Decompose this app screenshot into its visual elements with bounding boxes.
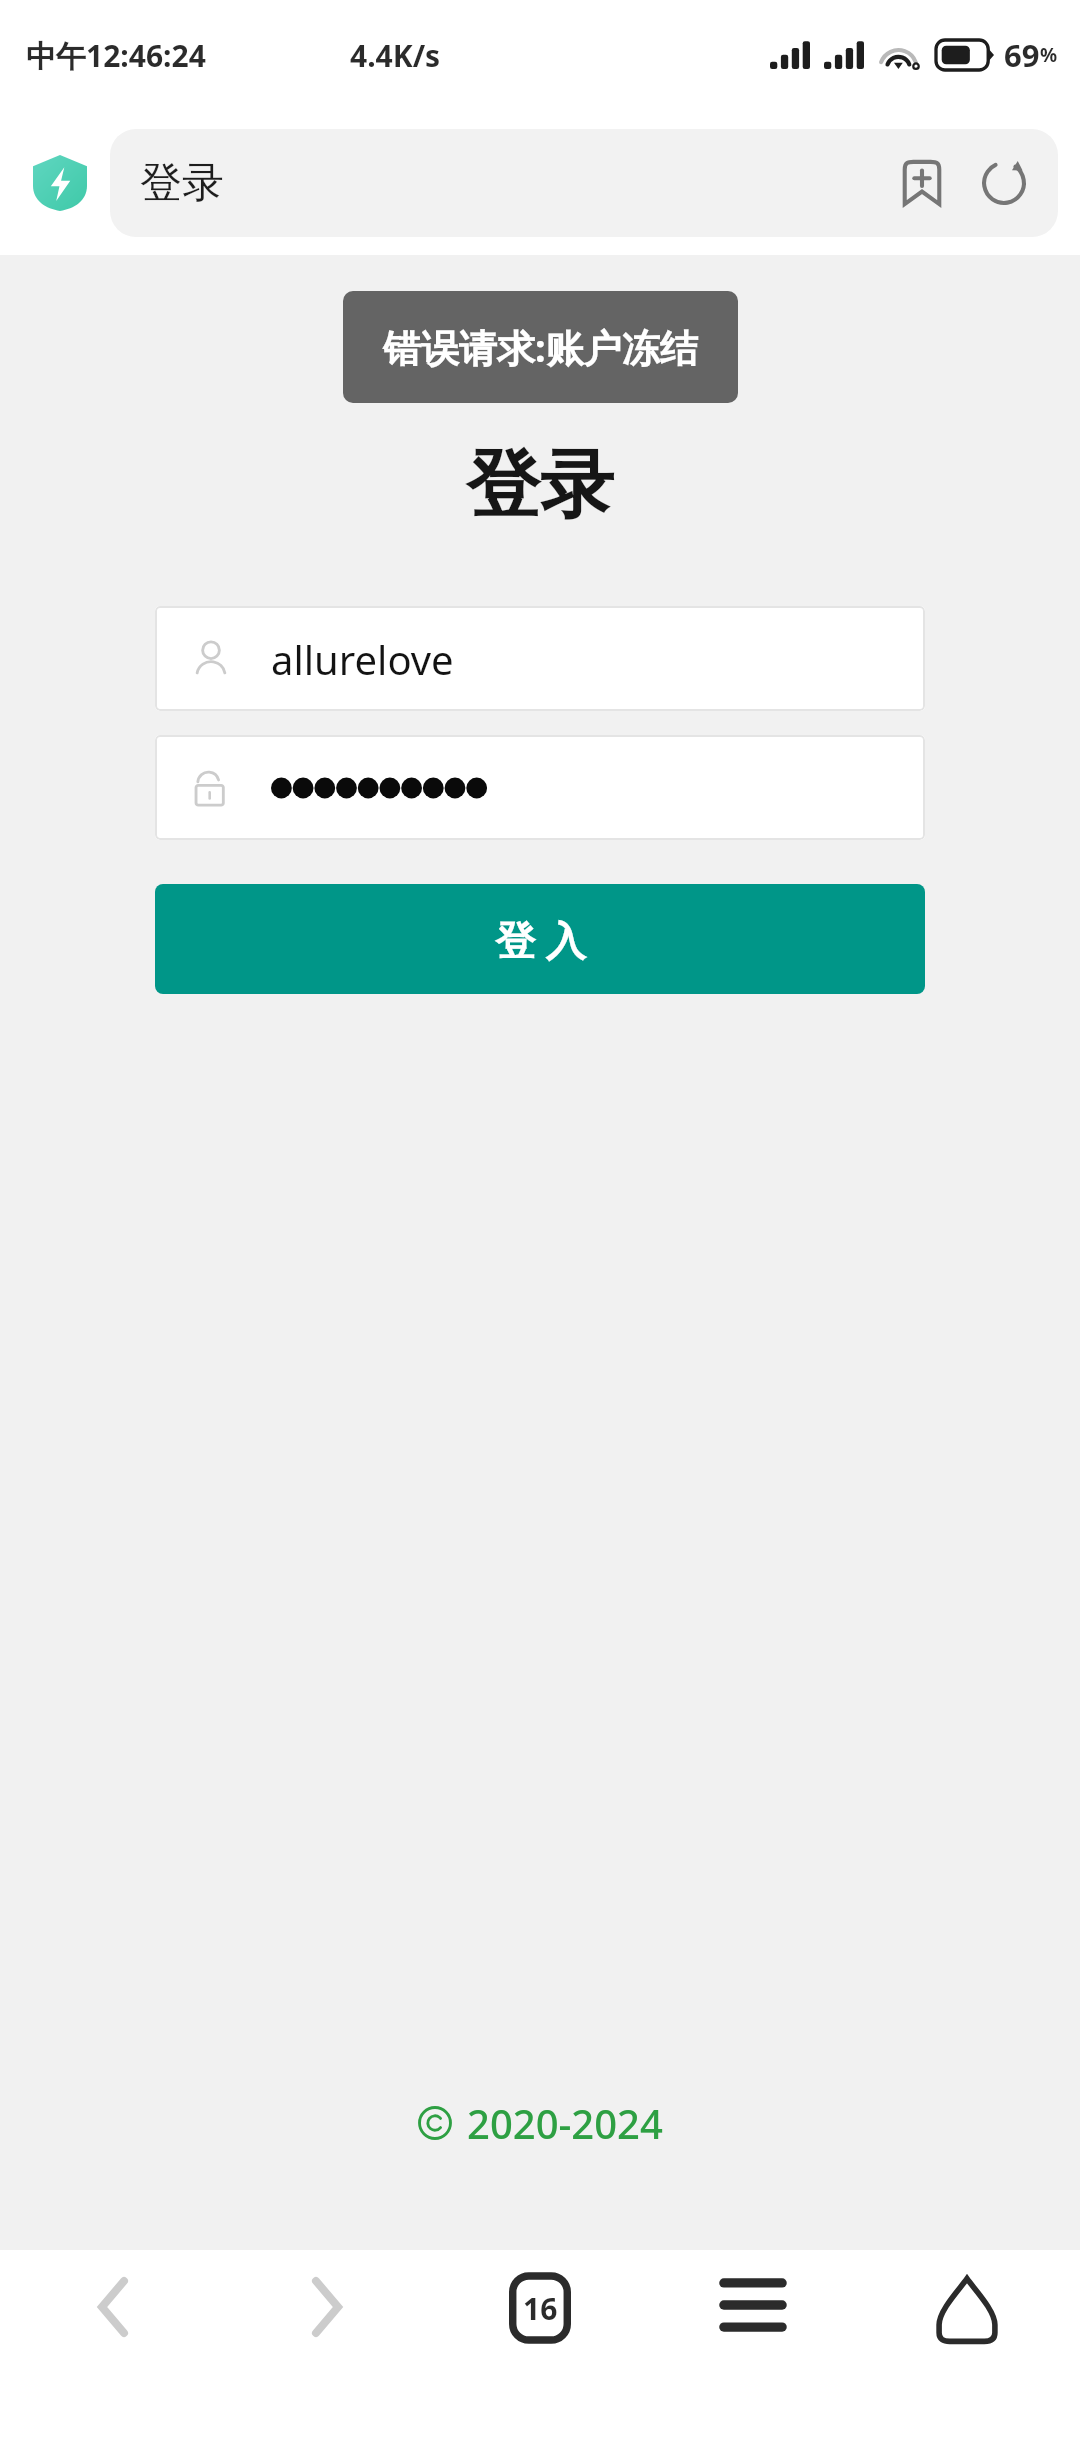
button[interactable]: Refresh [966, 145, 1042, 221]
staticText: 登录 [140, 157, 224, 210]
button[interactable]: Forward [227, 2250, 427, 2400]
staticText: 2020-2024 [467, 2096, 663, 2150]
staticText: allurelove [271, 632, 454, 686]
button[interactable]: Security shield [32, 155, 88, 211]
button[interactable]: Tabs: 16 [440, 2250, 640, 2400]
button[interactable] [155, 735, 925, 840]
button[interactable]: 登 入 [155, 884, 925, 994]
staticText: 登录 [466, 439, 614, 532]
button[interactable]: 登录 [110, 129, 1058, 237]
staticText: 69 [1004, 34, 1040, 76]
staticText: 16 [523, 2288, 558, 2329]
staticText: 登 入 [495, 912, 586, 967]
button[interactable]: Menu [653, 2250, 853, 2400]
button[interactable]: Home [867, 2250, 1067, 2400]
staticText: % [1040, 42, 1058, 68]
button[interactable]: 错误请求:账户冻结 [343, 291, 738, 403]
button[interactable]: Add bookmark [884, 145, 960, 221]
staticText: 中午12:46:24 [26, 35, 206, 76]
staticText: 4.4K/s [350, 35, 441, 76]
button[interactable]: Back [13, 2250, 213, 2400]
staticText: 错误请求:账户冻结 [383, 321, 698, 373]
button[interactable]: allurelove [155, 606, 925, 711]
